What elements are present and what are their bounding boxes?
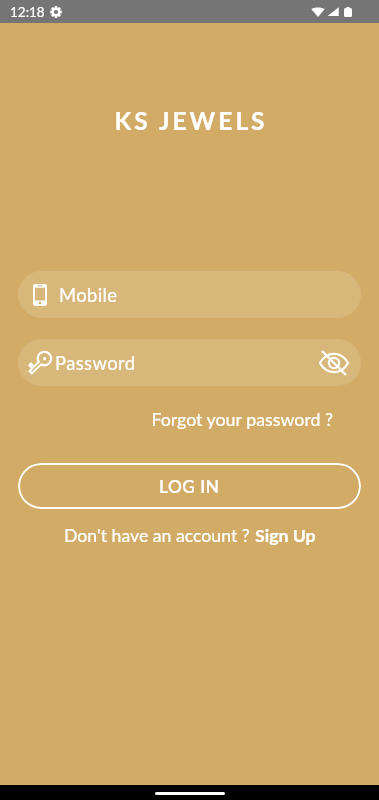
- staticText: Don't have an account ?: [64, 525, 255, 546]
- button[interactable]: Show password: [317, 346, 351, 380]
- staticText: Sign Up: [255, 525, 316, 546]
- staticText: Password: [55, 352, 136, 374]
- staticText: Mobile: [59, 284, 118, 306]
- button[interactable]: Sign Up: [255, 525, 316, 546]
- staticText: 12:18: [10, 4, 45, 20]
- staticText: KS JEWELS: [3, 106, 379, 135]
- button[interactable]: Mobile: [18, 271, 361, 318]
- button[interactable]: Forgot your password ?: [0, 408, 333, 429]
- button[interactable]: Password: [18, 339, 361, 386]
- button[interactable]: LOG IN: [18, 463, 361, 509]
- staticText: LOG IN: [159, 476, 220, 497]
